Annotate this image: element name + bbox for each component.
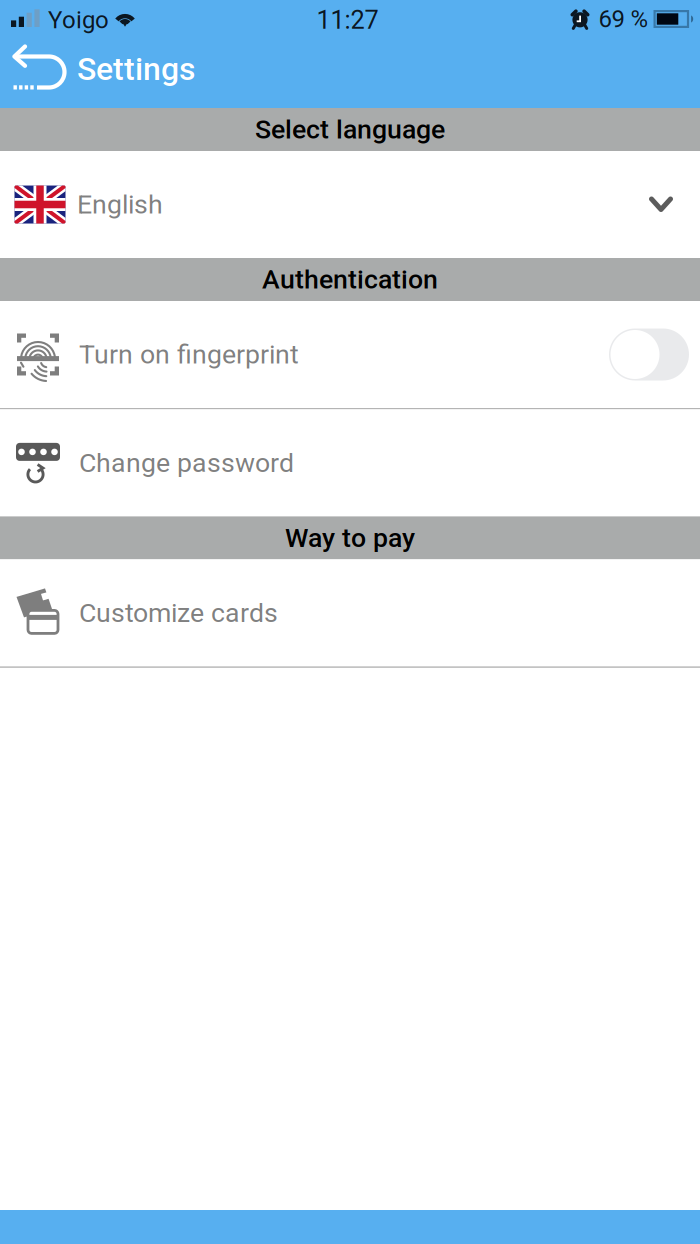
staticText: Select language <box>255 114 445 145</box>
staticText: Yoigo <box>48 6 109 34</box>
button[interactable]: Change password <box>0 409 700 516</box>
staticText: English <box>77 189 163 220</box>
staticText: Settings <box>77 50 195 88</box>
button[interactable]: Turn on fingerprint <box>0 301 700 408</box>
staticText: Way to pay <box>285 522 415 554</box>
button[interactable]: Back <box>0 40 77 108</box>
staticText: Change password <box>79 447 294 479</box>
button[interactable]: English <box>0 151 700 258</box>
staticText: Authentication <box>262 264 438 295</box>
staticText: 69 % <box>598 5 648 33</box>
staticText: 11:27 <box>316 5 378 35</box>
staticText: Turn on fingerprint <box>79 339 299 370</box>
button[interactable]: Customize cards <box>0 559 700 666</box>
staticText: Customize cards <box>79 597 278 629</box>
